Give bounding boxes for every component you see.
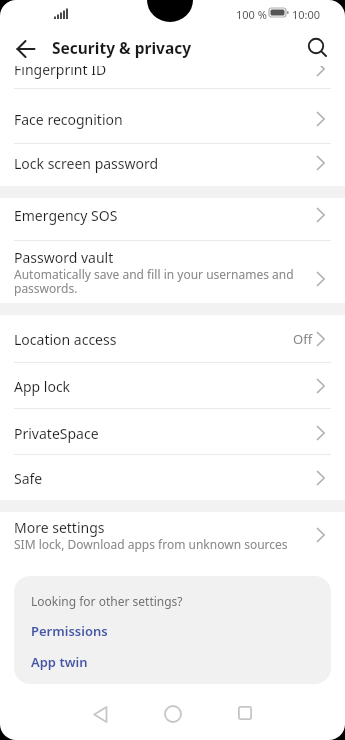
staticText: SIM lock, Download apps from unknown sou… <box>14 536 288 552</box>
staticText: 100 % <box>236 7 267 22</box>
staticText: Automatically save and fill in your user… <box>14 266 294 282</box>
button[interactable] <box>0 143 345 186</box>
button[interactable] <box>0 408 345 454</box>
staticText: Security & privacy <box>52 37 192 58</box>
staticText: Looking for other settings? <box>31 593 183 609</box>
staticText: Emergency SOS <box>14 206 118 225</box>
staticText: Safe <box>14 469 43 488</box>
button[interactable] <box>0 240 345 303</box>
staticText: Lock screen password <box>14 154 159 173</box>
staticText: Off <box>293 330 313 348</box>
staticText: 10:00 <box>292 7 321 22</box>
staticText: App twin <box>31 653 88 671</box>
button[interactable] <box>302 34 334 62</box>
staticText: Fingerprint ID <box>14 66 107 79</box>
staticText: App lock <box>14 377 71 396</box>
staticText: More settings <box>14 518 105 537</box>
staticText: Permissions <box>31 622 108 640</box>
staticText: Location access <box>14 330 117 349</box>
button[interactable] <box>0 454 345 500</box>
button[interactable]: Fingerprint ID <box>0 66 345 88</box>
button[interactable] <box>0 88 345 143</box>
staticText: PrivateSpace <box>14 424 99 443</box>
button[interactable] <box>80 698 120 730</box>
staticText: Password vault <box>14 248 114 267</box>
button[interactable] <box>153 698 193 730</box>
button[interactable] <box>0 512 345 568</box>
button[interactable] <box>0 315 345 362</box>
staticText: Face recognition <box>14 110 123 129</box>
button[interactable] <box>0 198 345 240</box>
button[interactable] <box>225 698 265 730</box>
button[interactable] <box>0 362 345 408</box>
button[interactable] <box>6 37 46 61</box>
staticText: passwords. <box>14 280 78 296</box>
button[interactable]: App twin <box>22 649 122 674</box>
button[interactable]: Permissions <box>22 618 142 643</box>
